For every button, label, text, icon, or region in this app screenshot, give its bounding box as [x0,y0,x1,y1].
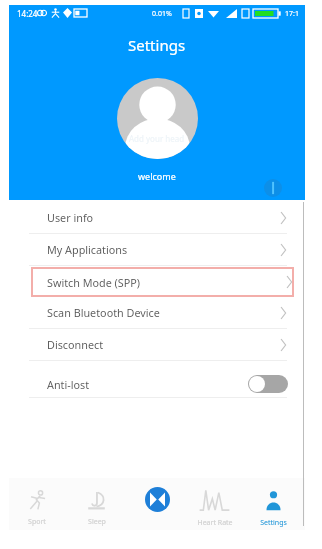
staticText: 0.01% [152,9,172,19]
button[interactable]: Information [264,179,282,197]
button[interactable]: Switch Mode (SPP) [31,267,294,297]
staticText: Heart Rate [197,518,233,528]
button[interactable]: Anti-lost [9,361,305,397]
staticText: Scan Bluetooth Device [47,305,160,320]
staticText: Add your head [129,133,185,144]
button[interactable]: My Applications [9,234,305,265]
button[interactable]: Sleep [67,478,126,530]
button[interactable]: Settings [244,478,303,530]
staticText: Sport [28,517,46,527]
staticText: Settings [260,518,287,528]
staticText: Settings [128,35,186,55]
button[interactable]: Scan Bluetooth Device [9,297,305,328]
button[interactable]: Anti-lost toggle [248,375,288,393]
button[interactable]: User info [9,202,305,233]
staticText: welcome [138,170,176,182]
staticText: 17:1 [285,9,299,19]
staticText: User info [47,210,94,225]
staticText: Disconnect [47,337,104,352]
button[interactable]: Heart Rate [185,478,244,530]
staticText: Switch Mode (SPP) [47,275,141,290]
staticText: Sleep [88,517,106,527]
button[interactable]: Connect device [126,478,185,530]
staticText: Anti-lost [47,377,90,392]
button[interactable]: Disconnect [9,329,305,360]
button[interactable] [117,78,198,159]
staticText: My Applications [47,242,128,257]
staticText: 14:24 [17,8,38,19]
button[interactable]: Sport [7,478,67,530]
